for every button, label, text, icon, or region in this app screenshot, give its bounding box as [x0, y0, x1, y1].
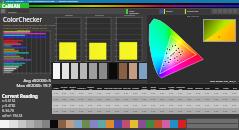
- staticText: 0.00: [106, 110, 111, 113]
- staticText: 0.00: [187, 98, 192, 101]
- staticText: 0.00: [54, 98, 59, 101]
- staticText: Moderate Red: [176, 86, 185, 90]
- staticText: Blue Flower: [140, 86, 149, 90]
- staticText: Source: [166, 10, 173, 13]
- staticText: 0.00: [79, 98, 84, 101]
- staticText: 0.00: [160, 92, 165, 95]
- staticText: 0.00: [142, 110, 147, 113]
- button[interactable]: Meter Connected: [126, 9, 159, 14]
- staticText: Pattern Gen: [187, 10, 199, 13]
- staticText: 0.00: [70, 110, 75, 113]
- staticText: Bluish Green: [149, 86, 158, 90]
- staticText: 0.00: [142, 104, 147, 107]
- staticText: Orange: [159, 87, 166, 90]
- staticText: 0.00: [196, 92, 201, 95]
- staticText: Session: [8, 10, 17, 13]
- staticText: Neutral 3.5: [86, 86, 95, 90]
- staticText: 0.00: [133, 104, 138, 107]
- staticText: 0.00: [214, 92, 219, 95]
- staticText: 0.00: [151, 110, 156, 113]
- staticText: CIE 1931 xy: [187, 15, 199, 18]
- staticText: x: 0.6152: [2, 99, 16, 103]
- staticText: 0.00: [97, 110, 102, 113]
- staticText: 0.00: [223, 110, 228, 113]
- staticText: fL 56.78: [2, 109, 14, 113]
- staticText: 0.00: [62, 98, 67, 101]
- staticText: 0.00: [142, 92, 147, 95]
- staticText: cd/m²: 194.53: [2, 114, 23, 118]
- staticText: 0.00: [79, 110, 84, 113]
- staticText: 0.00: [88, 110, 93, 113]
- staticText: 0.00: [214, 104, 219, 107]
- staticText: 0.00: [79, 104, 84, 107]
- staticText: Current Reading: [2, 93, 38, 99]
- staticText: 0.00: [115, 92, 120, 95]
- staticText: 0.00: [205, 98, 210, 101]
- staticText: Dark Skin: [104, 87, 113, 90]
- button[interactable]: Status: [160, 10, 163, 13]
- staticText: 0.00: [54, 92, 59, 95]
- staticText: 0.00: [232, 104, 237, 107]
- staticText: 0.00: [169, 104, 174, 107]
- staticText: 0.00: [223, 92, 228, 95]
- staticText: ColorChecker: [3, 15, 43, 23]
- staticText: Foliage: [132, 87, 139, 90]
- staticText: 0.00: [70, 92, 75, 95]
- staticText: 0.00: [169, 110, 174, 113]
- staticText: 0.00: [187, 110, 192, 113]
- button[interactable]: Session: [7, 9, 29, 13]
- staticText: Avg dE2000: 5: [3, 78, 51, 84]
- staticText: 0.00: [160, 104, 165, 107]
- staticText: Black: [97, 87, 102, 90]
- button[interactable]: Source: [164, 9, 184, 14]
- staticText: Contrast: [95, 14, 104, 17]
- staticText: Cyan: [205, 87, 210, 90]
- staticText: 0.00: [232, 92, 237, 95]
- staticText: 0.00: [54, 104, 59, 107]
- staticText: 0.00: [205, 104, 210, 107]
- staticText: 0.00: [70, 98, 75, 101]
- staticText: Luminance: [124, 14, 135, 17]
- staticText: Neutral 5: [77, 87, 86, 90]
- button[interactable]: Pattern Gen: [185, 9, 211, 14]
- staticText: 0.00: [160, 110, 165, 113]
- staticText: Red: [215, 87, 219, 90]
- staticText: 0.00: [205, 92, 210, 95]
- staticText: 0.00: [133, 98, 138, 101]
- staticText: 0.00: [232, 110, 237, 113]
- staticText: Yellow: [187, 87, 193, 90]
- staticText: 0.00: [97, 98, 102, 101]
- staticText: 0.00: [160, 98, 165, 101]
- staticText: 0.00: [232, 98, 237, 101]
- staticText: 0.00: [115, 98, 120, 101]
- staticText: 0.00: [178, 98, 183, 101]
- staticText: 0.00: [70, 104, 75, 107]
- staticText: 0.00: [214, 98, 219, 101]
- staticText: 0.00: [151, 104, 156, 107]
- staticText: 0.00: [88, 104, 93, 107]
- staticText: Light Skin: [113, 87, 122, 90]
- staticText: RGB Triplet: 255, 255, 0: [210, 79, 236, 82]
- staticText: 0.00: [88, 98, 93, 101]
- staticText: Magenta: [195, 87, 203, 90]
- staticText: 0.00: [54, 110, 59, 113]
- staticText: Blue: [233, 87, 237, 90]
